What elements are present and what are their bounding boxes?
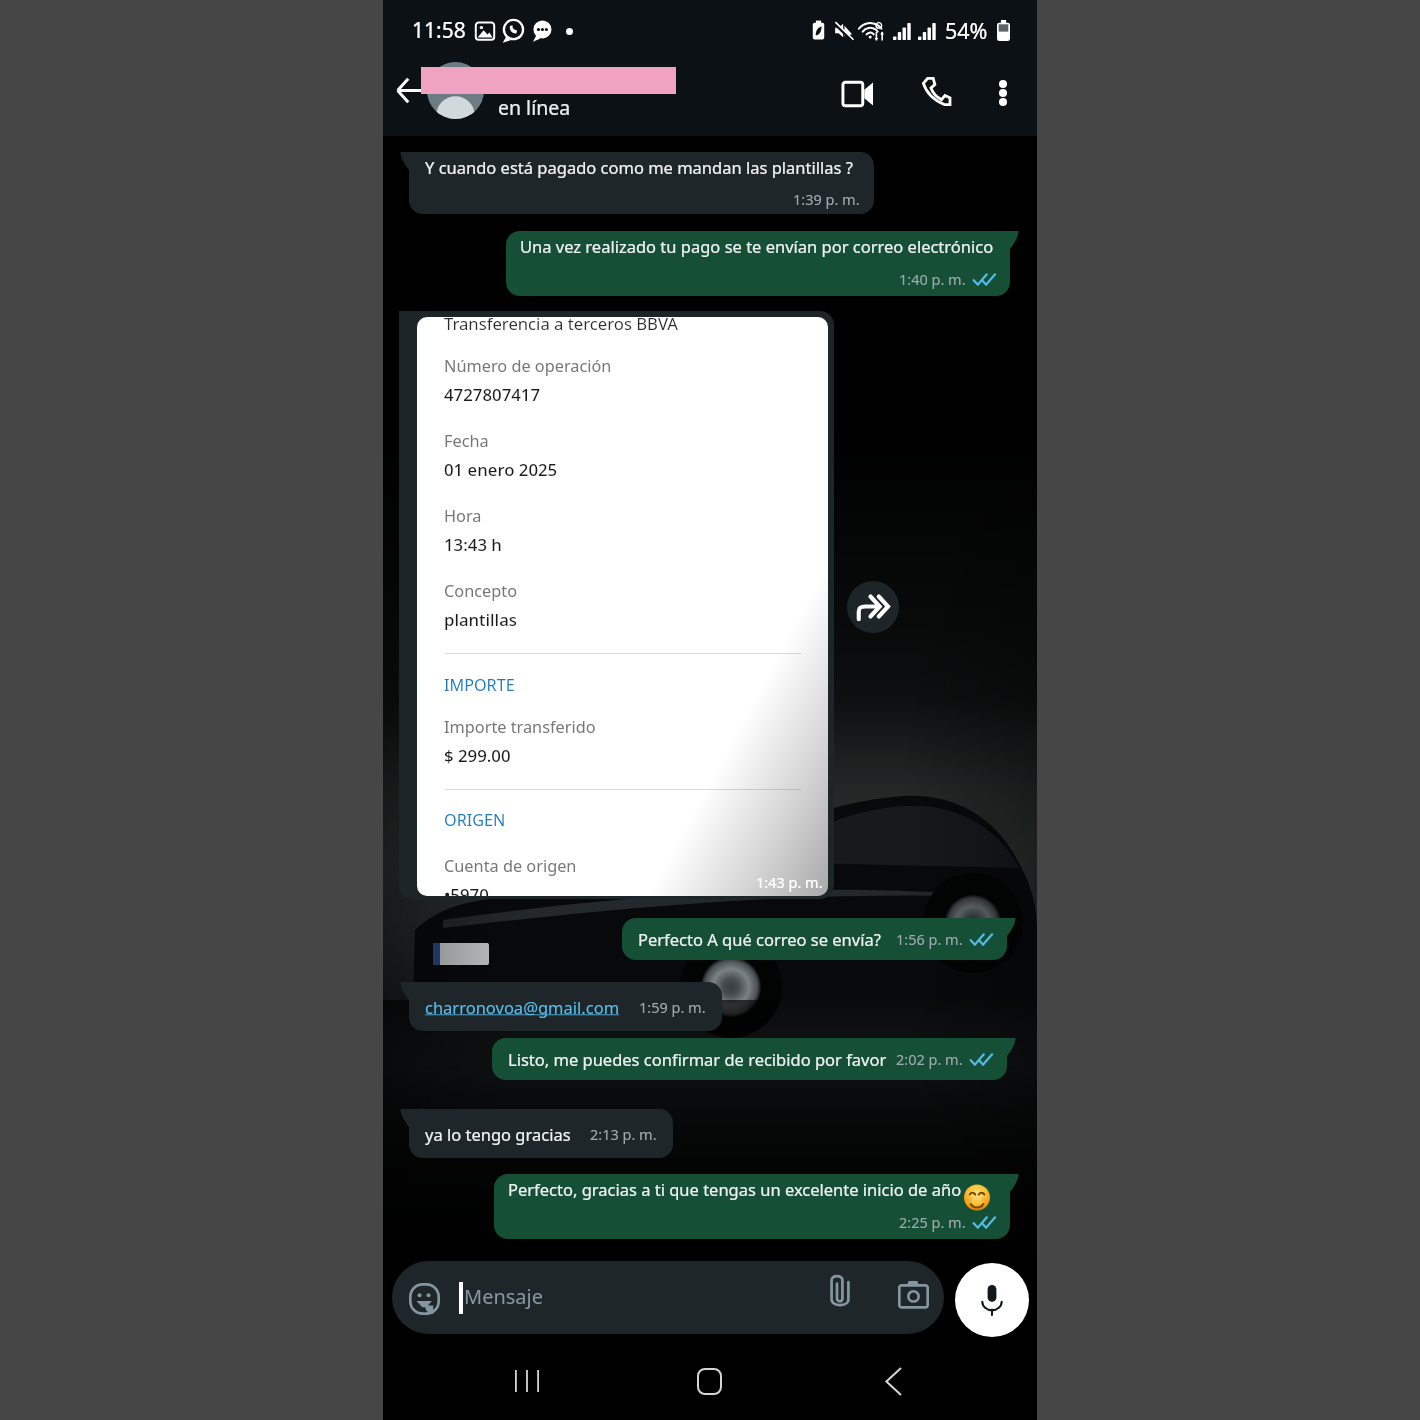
staticText: Importe transferido: [444, 716, 596, 738]
staticText: 2:02 p. m.: [896, 1049, 963, 1069]
button[interactable]: Emoji: [397, 1271, 452, 1326]
staticText: 13:43 h: [444, 533, 502, 556]
staticText: 01 enero 2025: [444, 458, 558, 481]
staticText: Y cuando está pagado como me mandan las …: [425, 156, 853, 178]
staticText: ORIGEN: [444, 809, 506, 831]
staticText: 4727807417: [444, 383, 541, 406]
button[interactable]: Forward: [847, 581, 899, 633]
button[interactable]: Voice message: [955, 1263, 1029, 1337]
staticText: •5970: [444, 883, 489, 896]
staticText: 2:13 p. m.: [590, 1124, 657, 1144]
button[interactable]: Perfecto A qué correo se envía?: [622, 918, 1007, 960]
button[interactable]: Video call: [832, 68, 883, 119]
button[interactable]: Home: [667, 1342, 751, 1420]
staticText: Fecha: [444, 430, 489, 452]
staticText: en línea: [498, 94, 571, 121]
button[interactable]: [392, 1261, 944, 1334]
staticText: 1:59 p. m.: [639, 997, 706, 1017]
staticText: charronovoa@gmail.com: [425, 996, 620, 1018]
staticText: 54%: [945, 16, 988, 45]
staticText: Concepto: [444, 580, 518, 602]
staticText: Número de operación: [444, 355, 612, 377]
staticText: 2:25 p. m.: [899, 1212, 966, 1232]
staticText: 1:39 p. m.: [793, 189, 860, 209]
staticText: 1:43 p. m.: [756, 872, 823, 892]
button[interactable]: Camera: [893, 1273, 934, 1314]
button[interactable]: [427, 62, 484, 119]
button[interactable]: Listo, me puedes confirmar de recibido p…: [492, 1038, 1007, 1080]
staticText: Listo, me puedes confirmar de recibido p…: [508, 1048, 887, 1070]
button[interactable]: More options: [980, 70, 1025, 115]
staticText: Una vez realizado tu pago se te envían p…: [520, 235, 994, 257]
button[interactable]: Transferencia a terceros BBVA: [399, 311, 834, 899]
staticText: 1:56 p. m.: [896, 929, 963, 949]
staticText: 1:40 p. m.: [899, 269, 966, 289]
staticText: Transferencia a terceros BBVA: [444, 317, 678, 335]
button[interactable]: ya lo tengo gracias: [409, 1109, 673, 1158]
button[interactable]: Perfecto, gracias a ti que tengas un exc…: [494, 1174, 1010, 1239]
staticText: Hora: [444, 505, 482, 527]
button[interactable]: Recent apps: [485, 1342, 569, 1420]
button[interactable]: charronovoa@gmail.com: [409, 982, 722, 1031]
staticText: Mensaje: [464, 1283, 544, 1310]
button[interactable]: Voice call: [910, 66, 961, 117]
staticText: Perfecto A qué correo se envía?: [638, 928, 881, 950]
button[interactable]: Back: [851, 1342, 935, 1420]
button[interactable]: Una vez realizado tu pago se te envían p…: [506, 231, 1010, 296]
staticText: $ 299.00: [444, 744, 511, 767]
button[interactable]: Attach: [819, 1270, 861, 1312]
staticText: Cuenta de origen: [444, 855, 577, 877]
staticText: plantillas: [444, 608, 517, 631]
staticText: 11:58: [412, 16, 466, 45]
button[interactable]: Y cuando está pagado como me mandan las …: [409, 152, 874, 214]
staticText: Perfecto, gracias a ti que tengas un exc…: [508, 1178, 962, 1200]
staticText: ya lo tengo gracias: [425, 1123, 571, 1145]
staticText: IMPORTE: [444, 674, 515, 696]
button[interactable]: Back: [373, 54, 445, 126]
